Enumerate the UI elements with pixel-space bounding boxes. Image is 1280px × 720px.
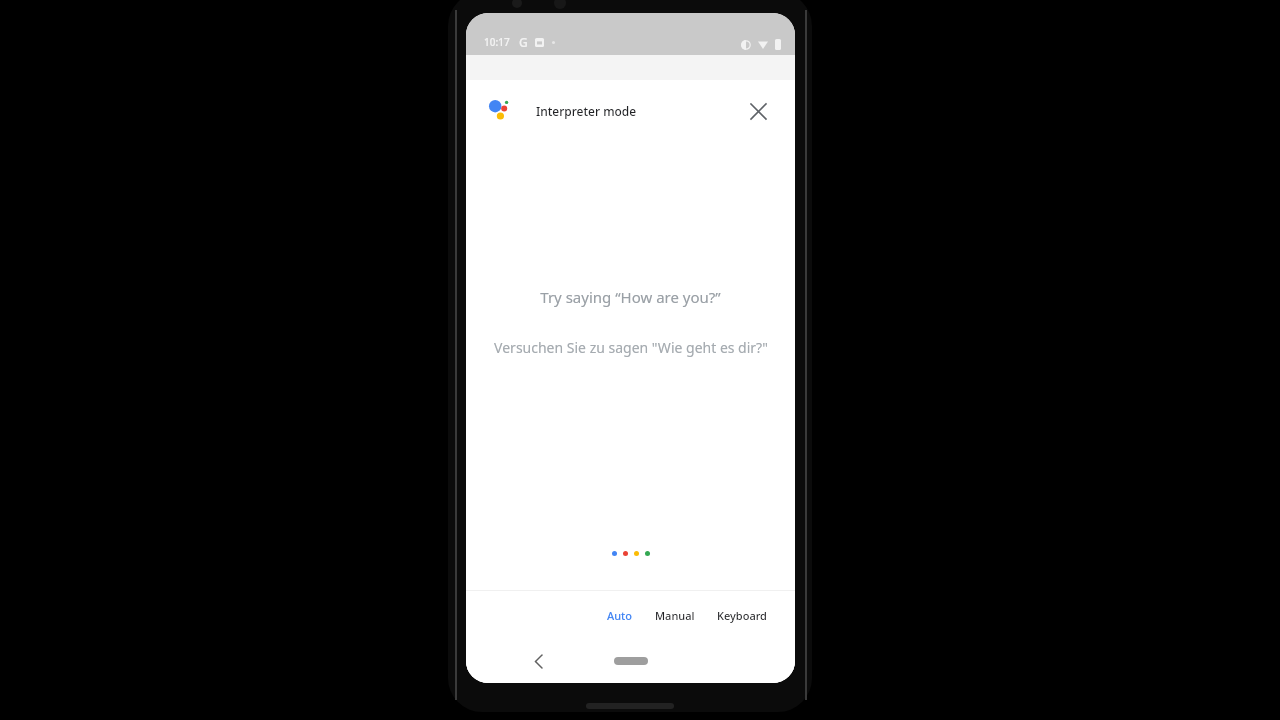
button[interactable]: Manual <box>651 602 699 629</box>
button[interactable]: Auto <box>603 602 637 629</box>
staticText: G <box>519 34 528 50</box>
staticText: Auto <box>607 608 633 623</box>
button[interactable]: Close <box>741 94 775 128</box>
staticText: Interpreter mode <box>536 103 637 119</box>
staticText: Keyboard <box>717 608 767 623</box>
staticText: Versuchen Sie zu sagen "Wie geht es dir?… <box>494 338 768 357</box>
button[interactable]: Home <box>614 657 648 665</box>
staticText: Try saying “How are you?” <box>540 287 721 307</box>
button[interactable]: Keyboard <box>713 602 771 629</box>
button[interactable]: Back <box>524 647 552 675</box>
staticText: Manual <box>655 608 695 623</box>
staticText: 10:17 <box>484 35 510 49</box>
